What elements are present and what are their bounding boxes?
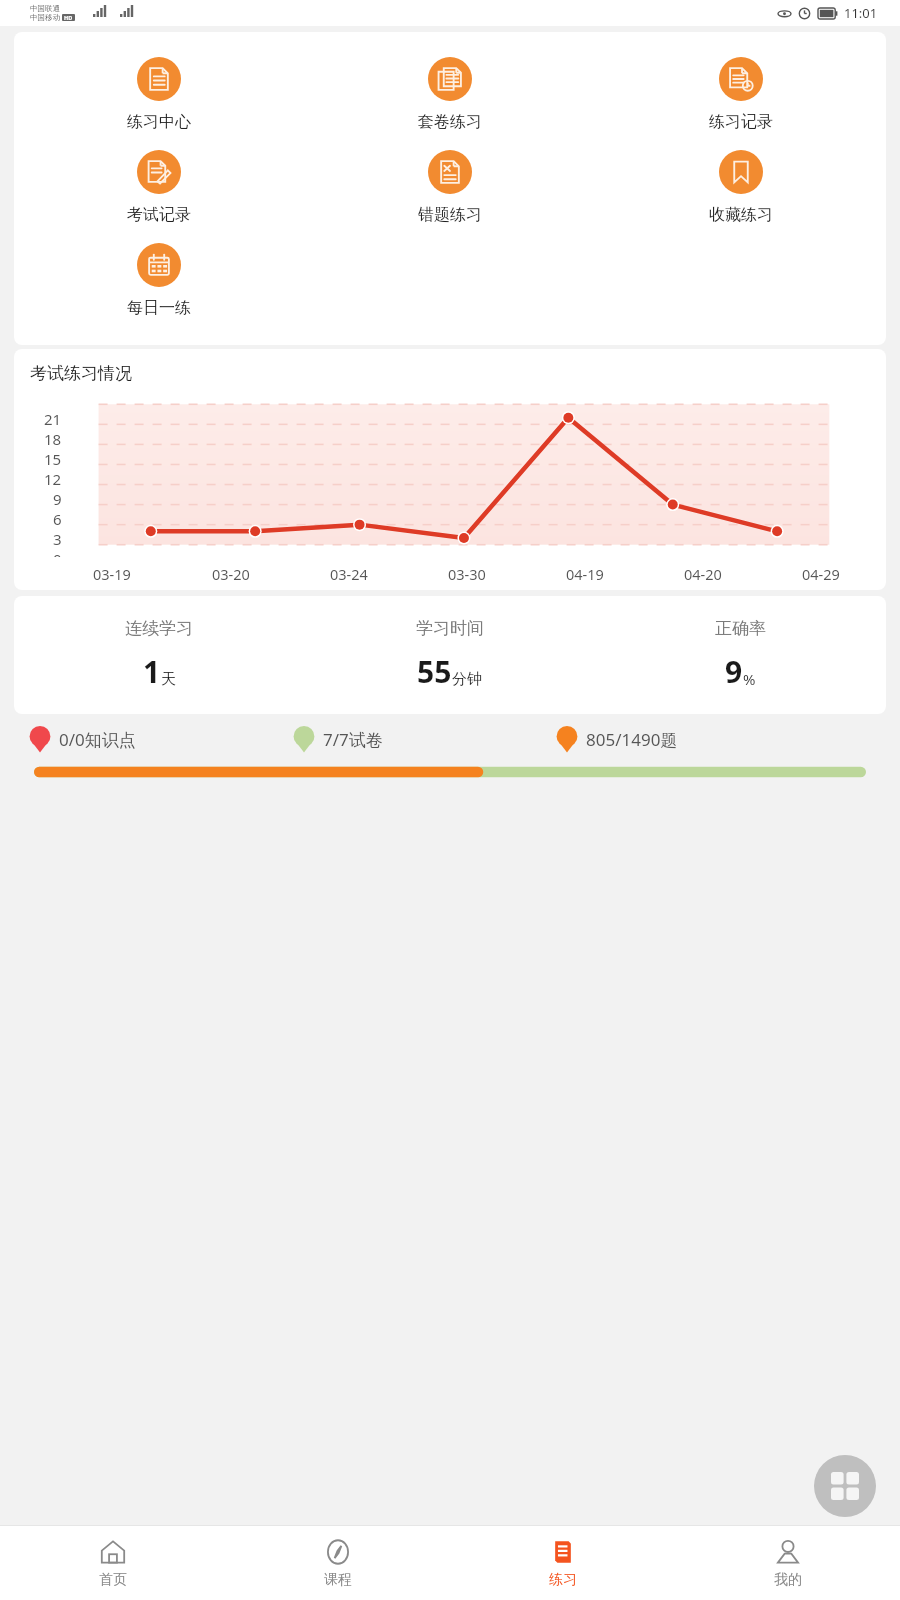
staticText: 03-19: [93, 564, 131, 584]
button[interactable]: 课程: [225, 1526, 450, 1600]
staticText: 练习中心: [127, 112, 191, 132]
staticText: 9: [53, 489, 62, 509]
button[interactable]: 首页: [0, 1526, 225, 1600]
staticText: 03-24: [330, 564, 368, 584]
staticText: 正确率: [715, 618, 766, 639]
staticText: 练习记录: [709, 112, 773, 132]
staticText: 21: [44, 409, 62, 429]
staticText: 每日一练: [127, 298, 191, 318]
staticText: 04-20: [684, 564, 722, 584]
button[interactable]: Grid menu: [814, 1455, 876, 1517]
button[interactable]: 每日一练: [14, 234, 304, 327]
staticText: 9: [725, 651, 743, 692]
staticText: 15: [44, 449, 62, 469]
button[interactable]: 错题练习: [304, 141, 595, 234]
staticText: 04-19: [566, 564, 604, 584]
button[interactable]: 我的: [675, 1526, 900, 1600]
staticText: 练习: [549, 1571, 577, 1589]
staticText: 错题练习: [418, 205, 482, 225]
staticText: 0: [53, 549, 62, 557]
staticText: HD: [64, 14, 73, 21]
staticText: 收藏练习: [709, 205, 773, 225]
staticText: 1: [143, 651, 161, 692]
button[interactable]: 收藏练习: [595, 141, 886, 234]
staticText: 考试练习情况: [30, 363, 132, 384]
staticText: 12: [44, 469, 62, 489]
staticText: 套卷练习: [418, 112, 482, 132]
button[interactable]: 考试记录: [14, 141, 304, 234]
staticText: 805/1490题: [586, 728, 678, 751]
staticText: 0/0知识点: [59, 728, 136, 751]
staticText: 学习时间: [416, 618, 484, 639]
staticText: 我的: [774, 1571, 802, 1589]
staticText: 03-30: [448, 564, 486, 584]
staticText: 11:01: [844, 4, 878, 22]
staticText: 中国联通: [30, 4, 60, 13]
staticText: %: [743, 669, 756, 689]
staticText: 03-20: [212, 564, 250, 584]
staticText: 中国移动: [30, 13, 60, 22]
staticText: 18: [44, 429, 62, 449]
button[interactable]: 套卷练习: [304, 48, 595, 141]
staticText: 首页: [99, 1571, 127, 1589]
staticText: 天: [161, 670, 176, 689]
staticText: 考试记录: [127, 205, 191, 225]
button[interactable]: 练习: [450, 1526, 675, 1600]
staticText: 7/7试卷: [323, 728, 383, 751]
staticText: 3: [53, 529, 62, 549]
staticText: 分钟: [452, 670, 482, 689]
staticText: 55: [417, 651, 452, 692]
button[interactable]: 练习中心: [14, 48, 304, 141]
staticText: 连续学习: [125, 618, 193, 639]
staticText: 04-29: [802, 564, 840, 584]
staticText: 6: [53, 509, 62, 529]
staticText: 课程: [324, 1571, 352, 1589]
button[interactable]: 练习记录: [595, 48, 886, 141]
